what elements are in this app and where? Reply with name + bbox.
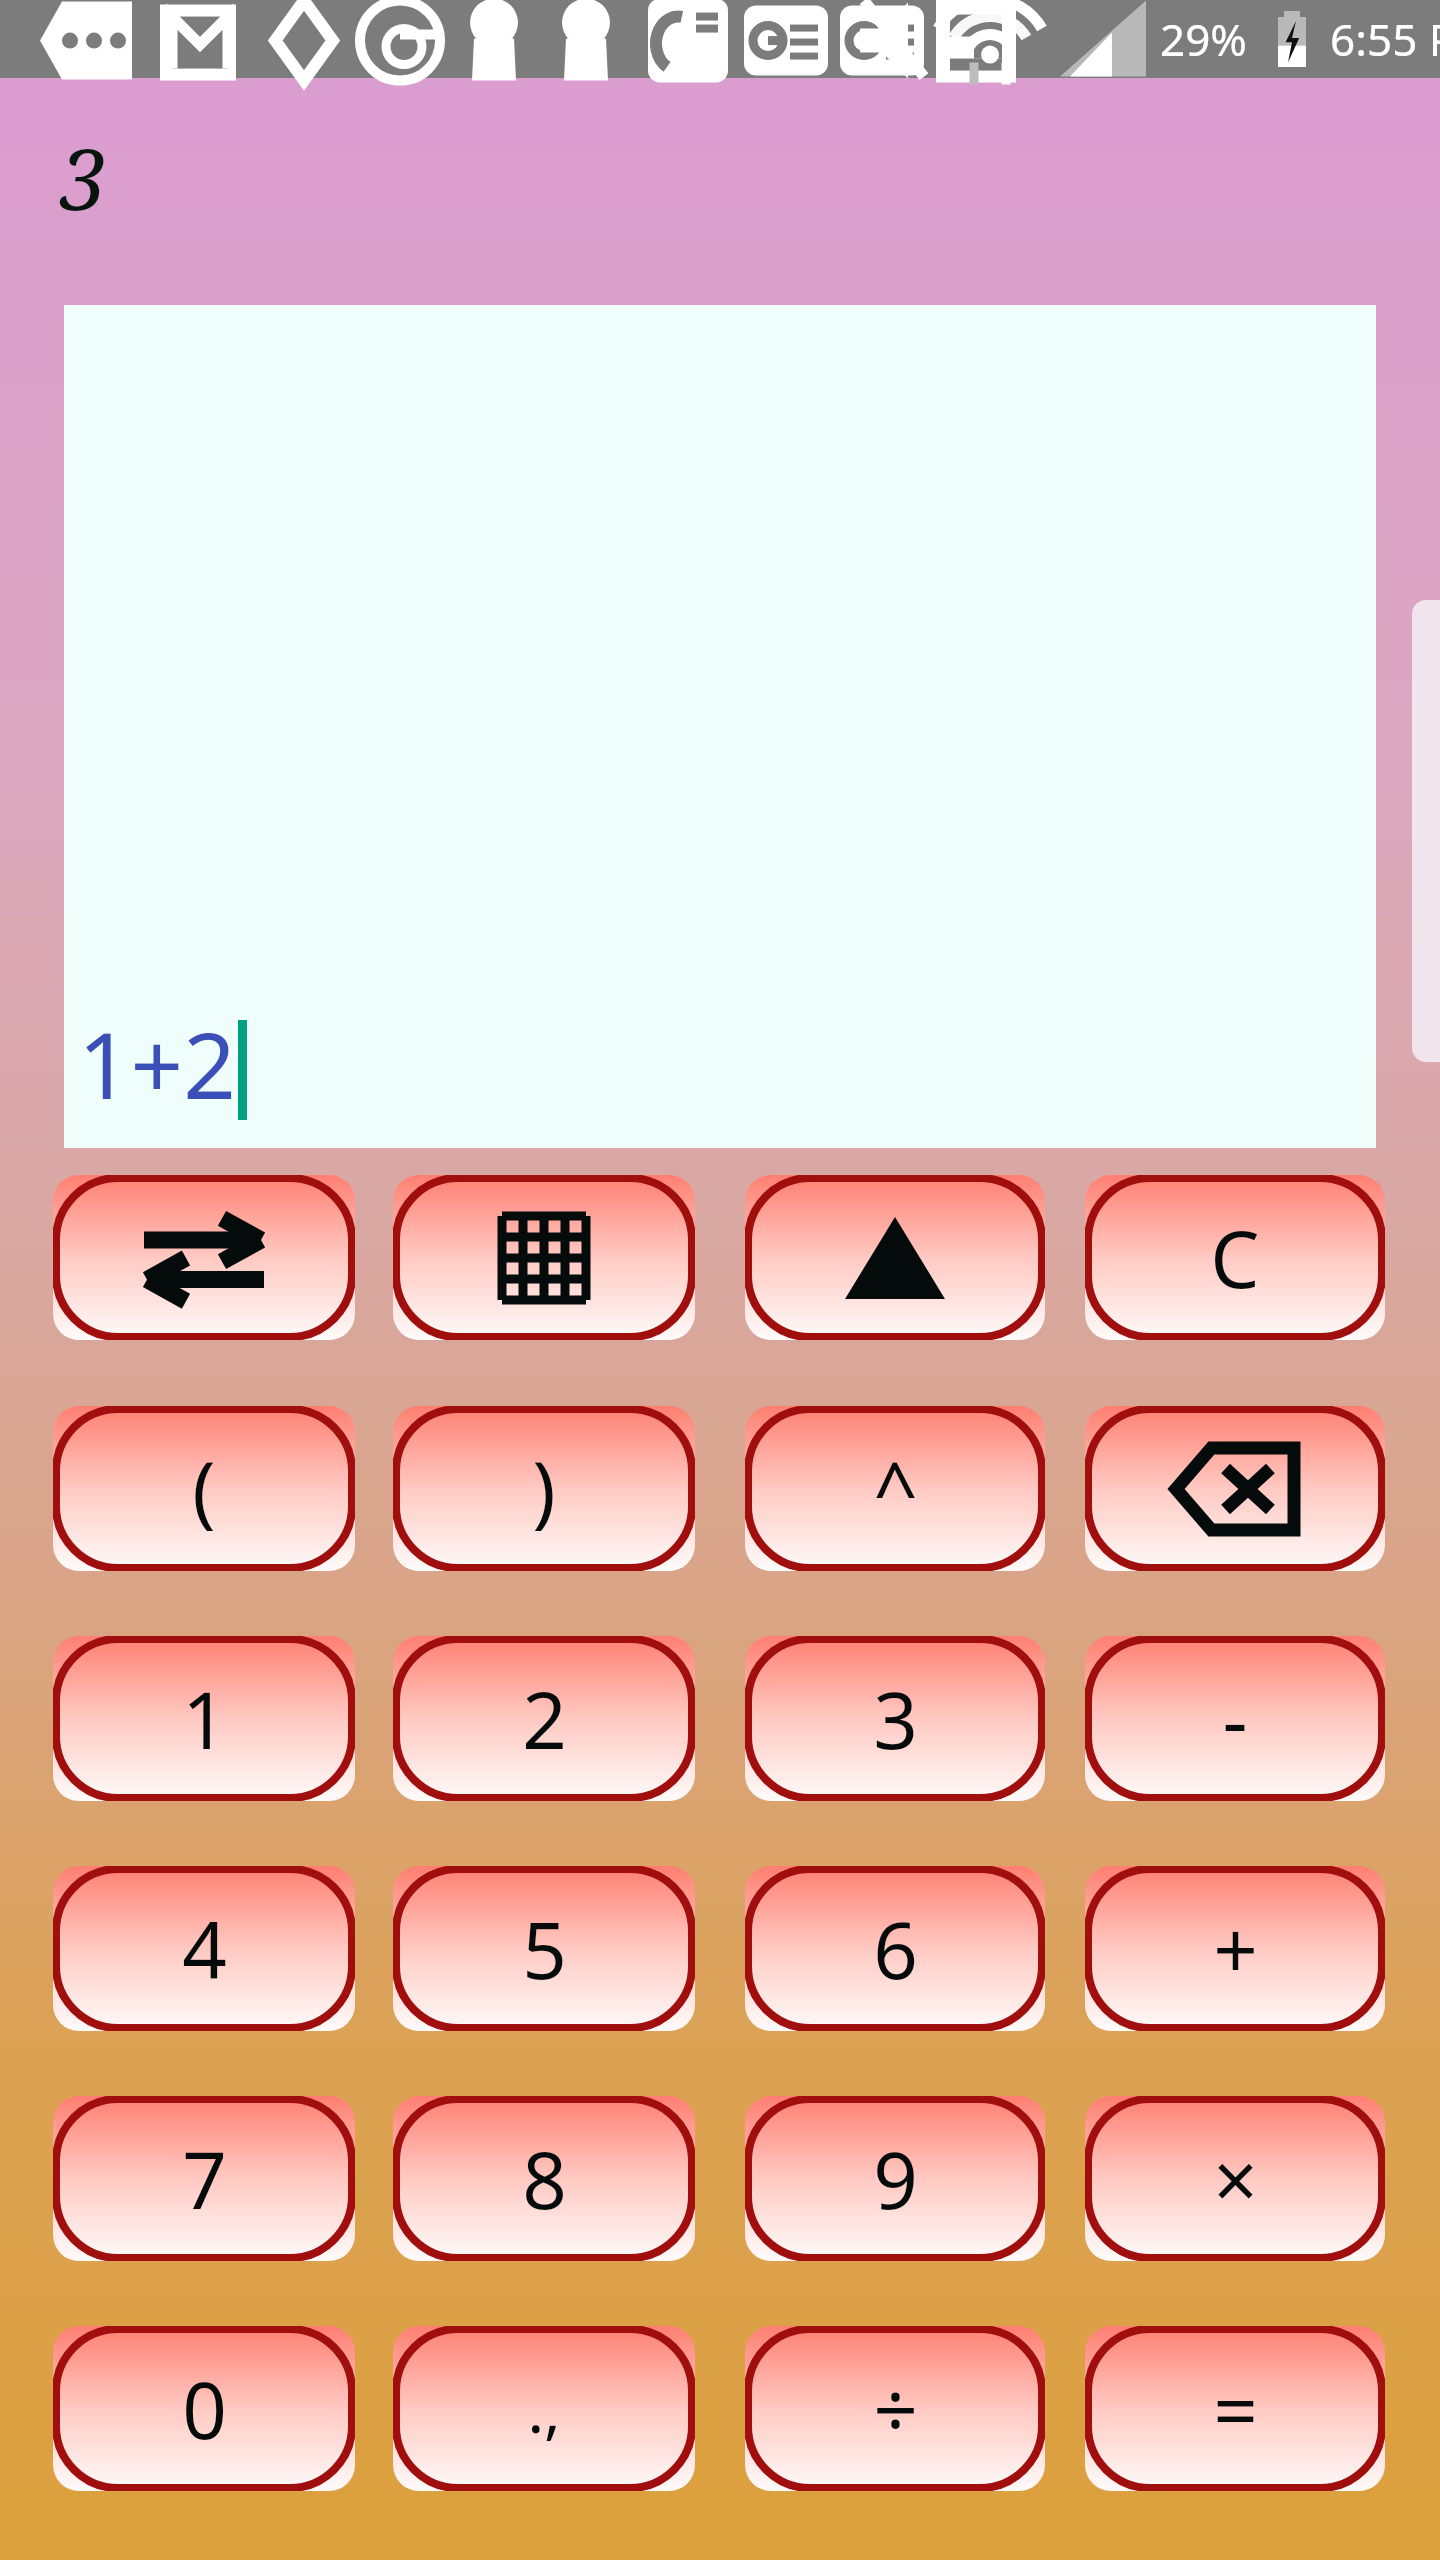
button[interactable]: Backspace — [1085, 1406, 1385, 1571]
button[interactable]: 1+2 — [64, 305, 1376, 1148]
button[interactable]: C — [1085, 1175, 1385, 1340]
button[interactable]: + — [1085, 1866, 1385, 2031]
staticText: 6 — [873, 1896, 918, 2002]
staticText: 6:55 PM — [1330, 9, 1440, 69]
staticText: - — [1222, 1666, 1248, 1772]
button[interactable]: ^ — [745, 1406, 1045, 1571]
staticText: 8 — [522, 2126, 567, 2232]
staticText: 1 — [182, 1666, 227, 1772]
button[interactable]: ) — [393, 1406, 695, 1571]
staticText: ÷ — [873, 2356, 918, 2462]
button[interactable]: Matrix — [393, 1175, 695, 1340]
staticText: ( — [192, 1436, 216, 1542]
button[interactable]: 2 — [393, 1636, 695, 1801]
button[interactable]: - — [1085, 1636, 1385, 1801]
button[interactable]: 1 — [53, 1636, 355, 1801]
button[interactable]: 3 — [745, 1636, 1045, 1801]
staticText: 3 — [873, 1666, 918, 1772]
staticText: 1+2 — [78, 1001, 236, 1126]
staticText: 7 — [182, 2126, 227, 2232]
staticText: ^ — [873, 1436, 918, 1542]
staticText: 0 — [182, 2356, 227, 2462]
staticText: 4 — [182, 1896, 227, 2002]
button[interactable]: 5 — [393, 1866, 695, 2031]
staticText: ., — [527, 2367, 561, 2451]
staticText: 9 — [873, 2126, 918, 2232]
button[interactable]: 9 — [745, 2096, 1045, 2261]
staticText: 29% — [1160, 9, 1247, 69]
staticText: ) — [532, 1436, 556, 1542]
button[interactable]: 8 — [393, 2096, 695, 2261]
button[interactable]: Up — [745, 1175, 1045, 1340]
staticText: = — [1213, 2356, 1258, 2462]
staticText: C — [1210, 1205, 1260, 1311]
staticText: 3 — [60, 120, 107, 234]
button[interactable]: ÷ — [745, 2326, 1045, 2491]
button[interactable]: ., — [393, 2326, 695, 2491]
button[interactable]: ( — [53, 1406, 355, 1571]
staticText: 2 — [522, 1666, 567, 1772]
button[interactable]: = — [1085, 2326, 1385, 2491]
button[interactable]: × — [1085, 2096, 1385, 2261]
staticText: + — [1213, 1896, 1258, 2002]
staticText: 5 — [522, 1896, 567, 2002]
button[interactable]: 7 — [53, 2096, 355, 2261]
button[interactable]: 6 — [745, 1866, 1045, 2031]
button[interactable]: 0 — [53, 2326, 355, 2491]
button[interactable]: 4 — [53, 1866, 355, 2031]
button[interactable]: Swap — [53, 1175, 355, 1340]
staticText: × — [1213, 2126, 1258, 2232]
